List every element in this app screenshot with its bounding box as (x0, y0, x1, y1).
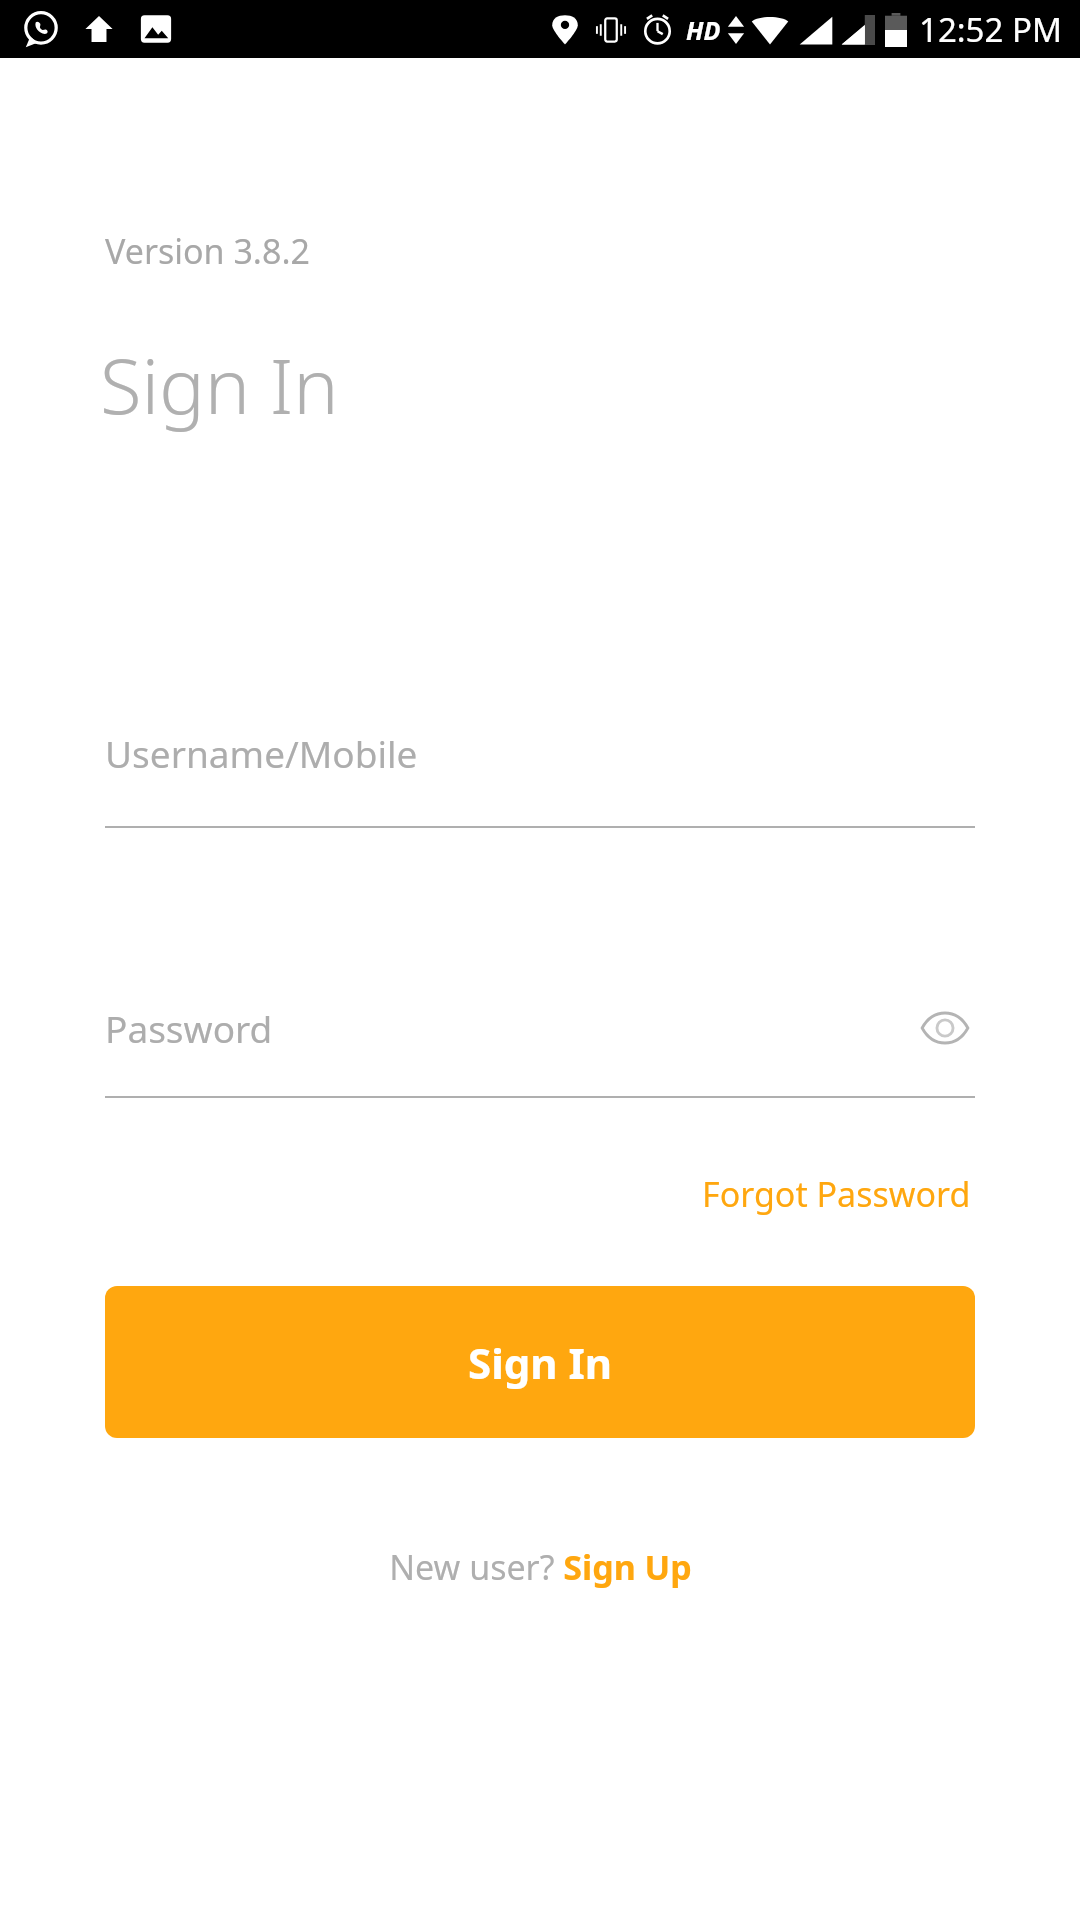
staticText: Sign In (100, 333, 339, 437)
staticText: Sign In (468, 1334, 613, 1391)
staticText: New user? Sign Up (389, 1544, 692, 1590)
button[interactable]: Show password (915, 998, 975, 1058)
button[interactable]: Forgot Password (698, 1163, 975, 1225)
button[interactable]: Sign In (105, 1286, 975, 1438)
staticText: Username/Mobile (105, 728, 418, 778)
button[interactable]: Password (105, 998, 975, 1058)
button[interactable]: New user? Sign Up (379, 1536, 702, 1598)
staticText: Version 3.8.2 (105, 228, 310, 274)
staticText: 12:52 PM (919, 7, 1062, 52)
button[interactable]: Username/Mobile (105, 728, 975, 828)
staticText: Forgot Password (702, 1171, 971, 1217)
staticText: HD (686, 13, 721, 47)
staticText: Password (105, 1003, 273, 1053)
